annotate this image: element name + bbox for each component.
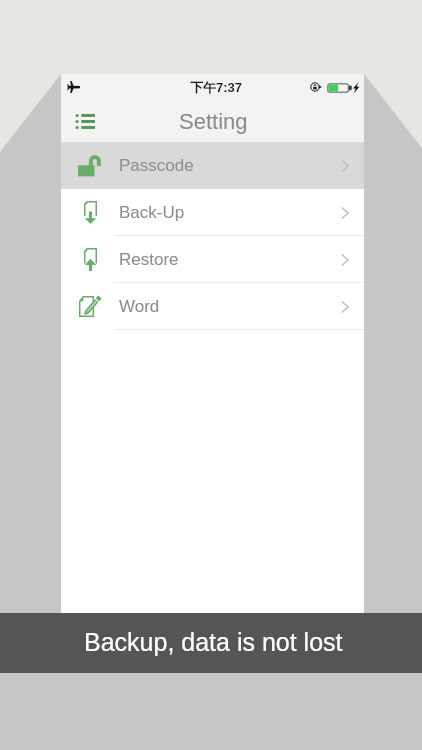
button[interactable]: Menu [68,104,102,138]
staticText: Passcode [119,156,194,175]
staticText: Setting [179,109,248,134]
staticText: Restore [119,250,179,269]
staticText: 下午7:37 [190,79,243,95]
button[interactable]: Word [61,283,364,330]
staticText: Backup, data is not lost [84,628,343,656]
button[interactable]: Passcode [61,142,364,189]
staticText: Back-Up [119,203,185,222]
staticText: Word [119,297,160,316]
button[interactable]: Back-Up [61,189,364,236]
button[interactable]: Backup, data is not lost [0,613,422,673]
button[interactable]: Restore [61,236,364,283]
